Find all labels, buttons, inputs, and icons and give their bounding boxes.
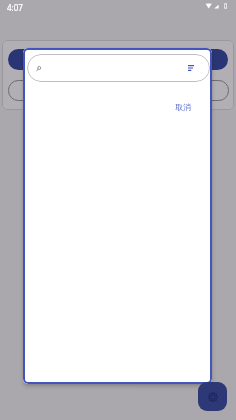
- button[interactable]: Settings: [198, 382, 227, 411]
- staticText: 4:07: [7, 2, 23, 13]
- staticText: 取消: [175, 102, 191, 112]
- button[interactable]: Filter: [185, 62, 197, 74]
- button[interactable]: 取消: [175, 102, 191, 112]
- button[interactable]: Filter: [27, 54, 210, 82]
